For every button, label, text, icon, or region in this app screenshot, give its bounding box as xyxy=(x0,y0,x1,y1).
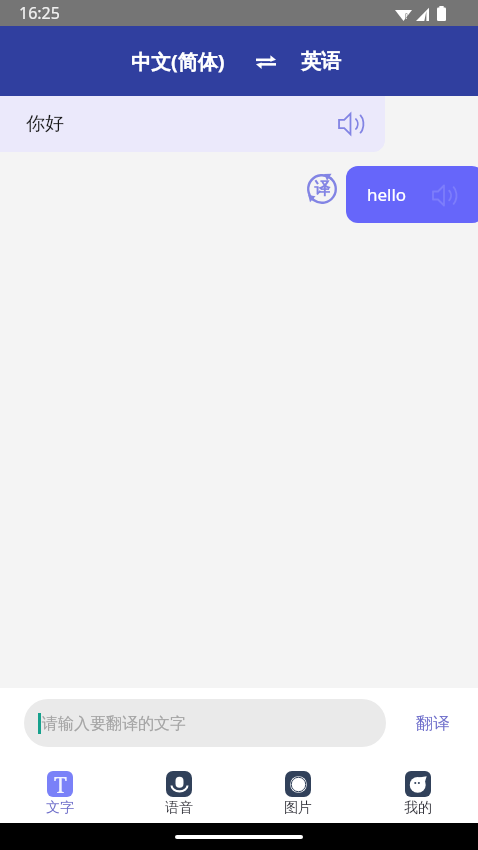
staticText: T xyxy=(54,771,67,797)
button[interactable]: 翻译 xyxy=(410,705,456,742)
button[interactable]: 图片 xyxy=(238,761,358,817)
staticText: 请输入要翻译的文字 xyxy=(42,714,186,734)
staticText: 中文(简体) xyxy=(131,48,225,75)
button[interactable]: Play audio xyxy=(432,183,457,208)
button[interactable]: Translate xyxy=(304,171,340,207)
staticText: 译 xyxy=(314,179,330,199)
button[interactable]: 你好 xyxy=(0,96,385,152)
staticText: 文字 xyxy=(46,799,74,817)
staticText: 你好 xyxy=(26,112,64,136)
button[interactable]: Play audio xyxy=(338,111,364,137)
button[interactable]: hello xyxy=(346,166,478,223)
staticText: 图片 xyxy=(284,799,312,817)
button[interactable]: 我的 xyxy=(358,761,478,817)
staticText: 16:25 xyxy=(19,2,60,24)
staticText: 翻译 xyxy=(416,713,450,734)
staticText: 英语 xyxy=(301,49,341,74)
button[interactable]: 语音 xyxy=(119,761,238,817)
button[interactable]: Swap languages xyxy=(252,51,280,72)
staticText: hello xyxy=(367,183,407,206)
staticText: 我的 xyxy=(404,799,432,817)
button[interactable]: T xyxy=(0,761,119,817)
button[interactable]: 中文(简体) xyxy=(127,40,229,83)
button[interactable]: 请输入要翻译的文字 xyxy=(24,699,386,747)
button[interactable]: 英语 xyxy=(297,41,345,82)
staticText: 语音 xyxy=(165,799,193,817)
